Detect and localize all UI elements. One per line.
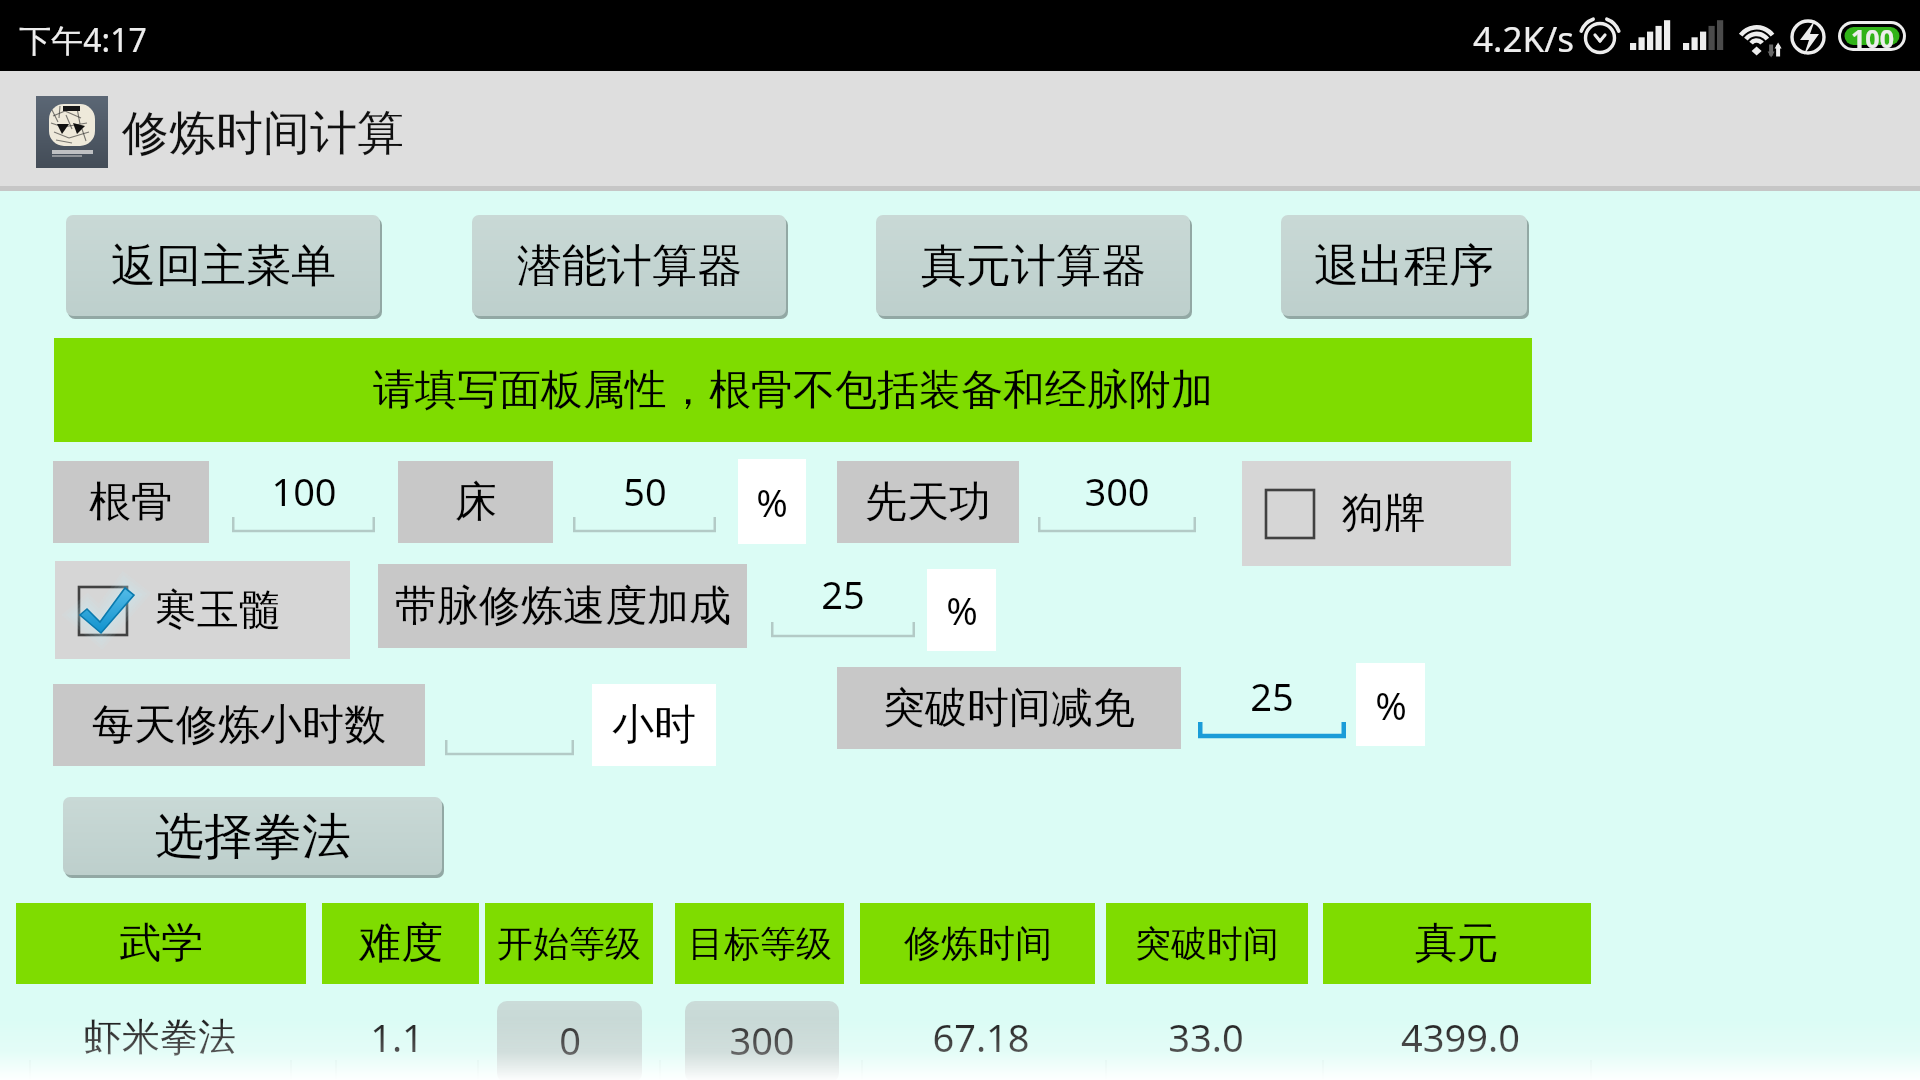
button[interactable]: 300: [1038, 461, 1196, 543]
button[interactable]: 25: [1198, 666, 1346, 748]
button[interactable]: 寒玉髓: [55, 561, 350, 659]
staticText: 33.0: [1168, 1011, 1244, 1063]
staticText: 300: [729, 1014, 795, 1066]
button[interactable]: 选择拳法: [63, 797, 442, 875]
staticText: 退出程序: [1314, 238, 1494, 295]
staticText: 开始等级: [497, 921, 641, 966]
button[interactable]: 开始等级: [485, 903, 653, 984]
other: Charging: [1790, 17, 1828, 57]
staticText: 虾米拳法: [84, 1013, 236, 1061]
staticText: 300: [1084, 465, 1150, 517]
staticText: 潜能计算器: [517, 238, 742, 295]
staticText: 修炼时间: [904, 920, 1052, 967]
staticText: 25: [821, 568, 865, 620]
staticText: 带脉修炼速度加成: [395, 580, 731, 633]
staticText: 突破时间: [1135, 921, 1279, 966]
staticText: 修炼时间计算: [122, 104, 404, 163]
button[interactable]: 床: [398, 461, 553, 543]
other: Alarm: [1580, 16, 1622, 58]
staticText: 选择拳法: [155, 806, 351, 868]
staticText: %: [946, 584, 978, 636]
staticText: 返回主菜单: [111, 238, 336, 295]
other: Signal: [1683, 19, 1723, 50]
button[interactable]: 狗牌: [1242, 461, 1511, 566]
button[interactable]: [445, 684, 574, 766]
button[interactable]: 先天功: [837, 461, 1019, 543]
button[interactable]: 带脉修炼速度加成: [378, 564, 747, 648]
staticText: 床: [455, 476, 497, 529]
staticText: 下午4:17: [19, 18, 147, 62]
staticText: 请填写面板属性，根骨不包括装备和经脉附加: [373, 364, 1213, 417]
staticText: %: [756, 476, 788, 528]
other: Battery 100%: [1838, 21, 1906, 51]
staticText: 50: [623, 465, 667, 517]
staticText: 武学: [119, 917, 203, 970]
button[interactable]: 每天修炼小时数: [53, 684, 425, 766]
button[interactable]: 突破时间减免: [837, 667, 1181, 749]
staticText: 每天修炼小时数: [92, 699, 386, 752]
button[interactable]: 难度: [322, 903, 479, 984]
staticText: 突破时间减免: [883, 682, 1135, 735]
button[interactable]: 武学: [16, 903, 306, 984]
staticText: 真元: [1415, 917, 1499, 970]
other: Signal: [1630, 19, 1670, 50]
staticText: 狗牌: [1342, 487, 1426, 540]
other: Wi-Fi: [1730, 14, 1782, 56]
staticText: 寒玉髓: [155, 584, 281, 637]
button[interactable]: 潜能计算器: [472, 215, 786, 316]
button[interactable]: 300: [685, 1001, 839, 1080]
staticText: 100: [271, 465, 337, 517]
staticText: 先天功: [865, 476, 991, 529]
button[interactable]: 返回主菜单: [66, 215, 380, 316]
button[interactable]: 50: [573, 461, 716, 543]
button[interactable]: 目标等级: [675, 903, 844, 984]
staticText: 67.18: [932, 1011, 1030, 1063]
button[interactable]: 真元: [1323, 903, 1591, 984]
staticText: 0: [559, 1014, 581, 1066]
staticText: 4399.0: [1401, 1011, 1520, 1063]
staticText: 根骨: [89, 476, 173, 529]
staticText: 真元计算器: [921, 238, 1146, 295]
button[interactable]: 0: [497, 1001, 642, 1080]
staticText: 100: [1851, 21, 1894, 51]
staticText: %: [1375, 679, 1407, 731]
staticText: 小时: [612, 699, 696, 752]
other: App icon: [36, 96, 108, 168]
staticText: 1.1: [370, 1011, 424, 1063]
button[interactable]: 真元计算器: [876, 215, 1190, 316]
button[interactable]: 25: [771, 562, 915, 648]
button[interactable]: 修炼时间: [860, 903, 1095, 984]
staticText: 25: [1250, 670, 1294, 722]
staticText: 4.2K/s: [1473, 15, 1574, 63]
button[interactable]: 100: [232, 461, 375, 543]
staticText: 目标等级: [688, 921, 832, 966]
button[interactable]: 突破时间: [1106, 903, 1308, 984]
staticText: 难度: [359, 917, 443, 970]
button[interactable]: 退出程序: [1281, 215, 1527, 316]
button[interactable]: 根骨: [53, 461, 209, 543]
